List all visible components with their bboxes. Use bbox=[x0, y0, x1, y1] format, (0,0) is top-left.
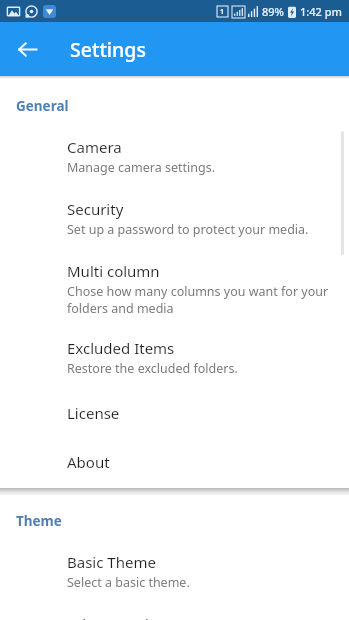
staticText: 89% bbox=[262, 4, 284, 19]
button[interactable]: Multi column bbox=[0, 261, 349, 316]
button[interactable]: Basic Theme bbox=[0, 552, 349, 591]
staticText: Excluded Items bbox=[67, 338, 175, 358]
staticText: Security bbox=[67, 199, 124, 219]
button[interactable]: About bbox=[0, 452, 349, 472]
staticText: Camera bbox=[67, 137, 122, 157]
button[interactable]: Primary Color bbox=[0, 614, 349, 620]
staticText: Manage camera settings. bbox=[67, 159, 216, 176]
staticText: Settings bbox=[70, 36, 146, 63]
button[interactable]: License bbox=[0, 403, 349, 423]
staticText: 1 bbox=[220, 7, 225, 17]
staticText: Set up a password to protect your media. bbox=[67, 221, 309, 238]
staticText: Chose how many columns you want for your… bbox=[67, 283, 335, 316]
staticText: About bbox=[67, 452, 110, 472]
staticText: Multi column bbox=[67, 261, 160, 281]
button[interactable]: Camera bbox=[0, 137, 349, 176]
staticText: Select a basic theme. bbox=[67, 574, 190, 591]
button[interactable]: Security bbox=[0, 199, 349, 238]
staticText: Restore the excluded folders. bbox=[67, 360, 238, 377]
staticText: General bbox=[16, 97, 349, 115]
staticText: Primary Color bbox=[67, 614, 165, 620]
button[interactable]: Back bbox=[11, 33, 43, 65]
staticText: Basic Theme bbox=[67, 552, 156, 572]
staticText: License bbox=[67, 403, 120, 423]
staticText: Theme bbox=[16, 512, 349, 530]
button[interactable]: Excluded Items bbox=[0, 338, 349, 377]
staticText: 1:42 pm bbox=[300, 4, 342, 19]
